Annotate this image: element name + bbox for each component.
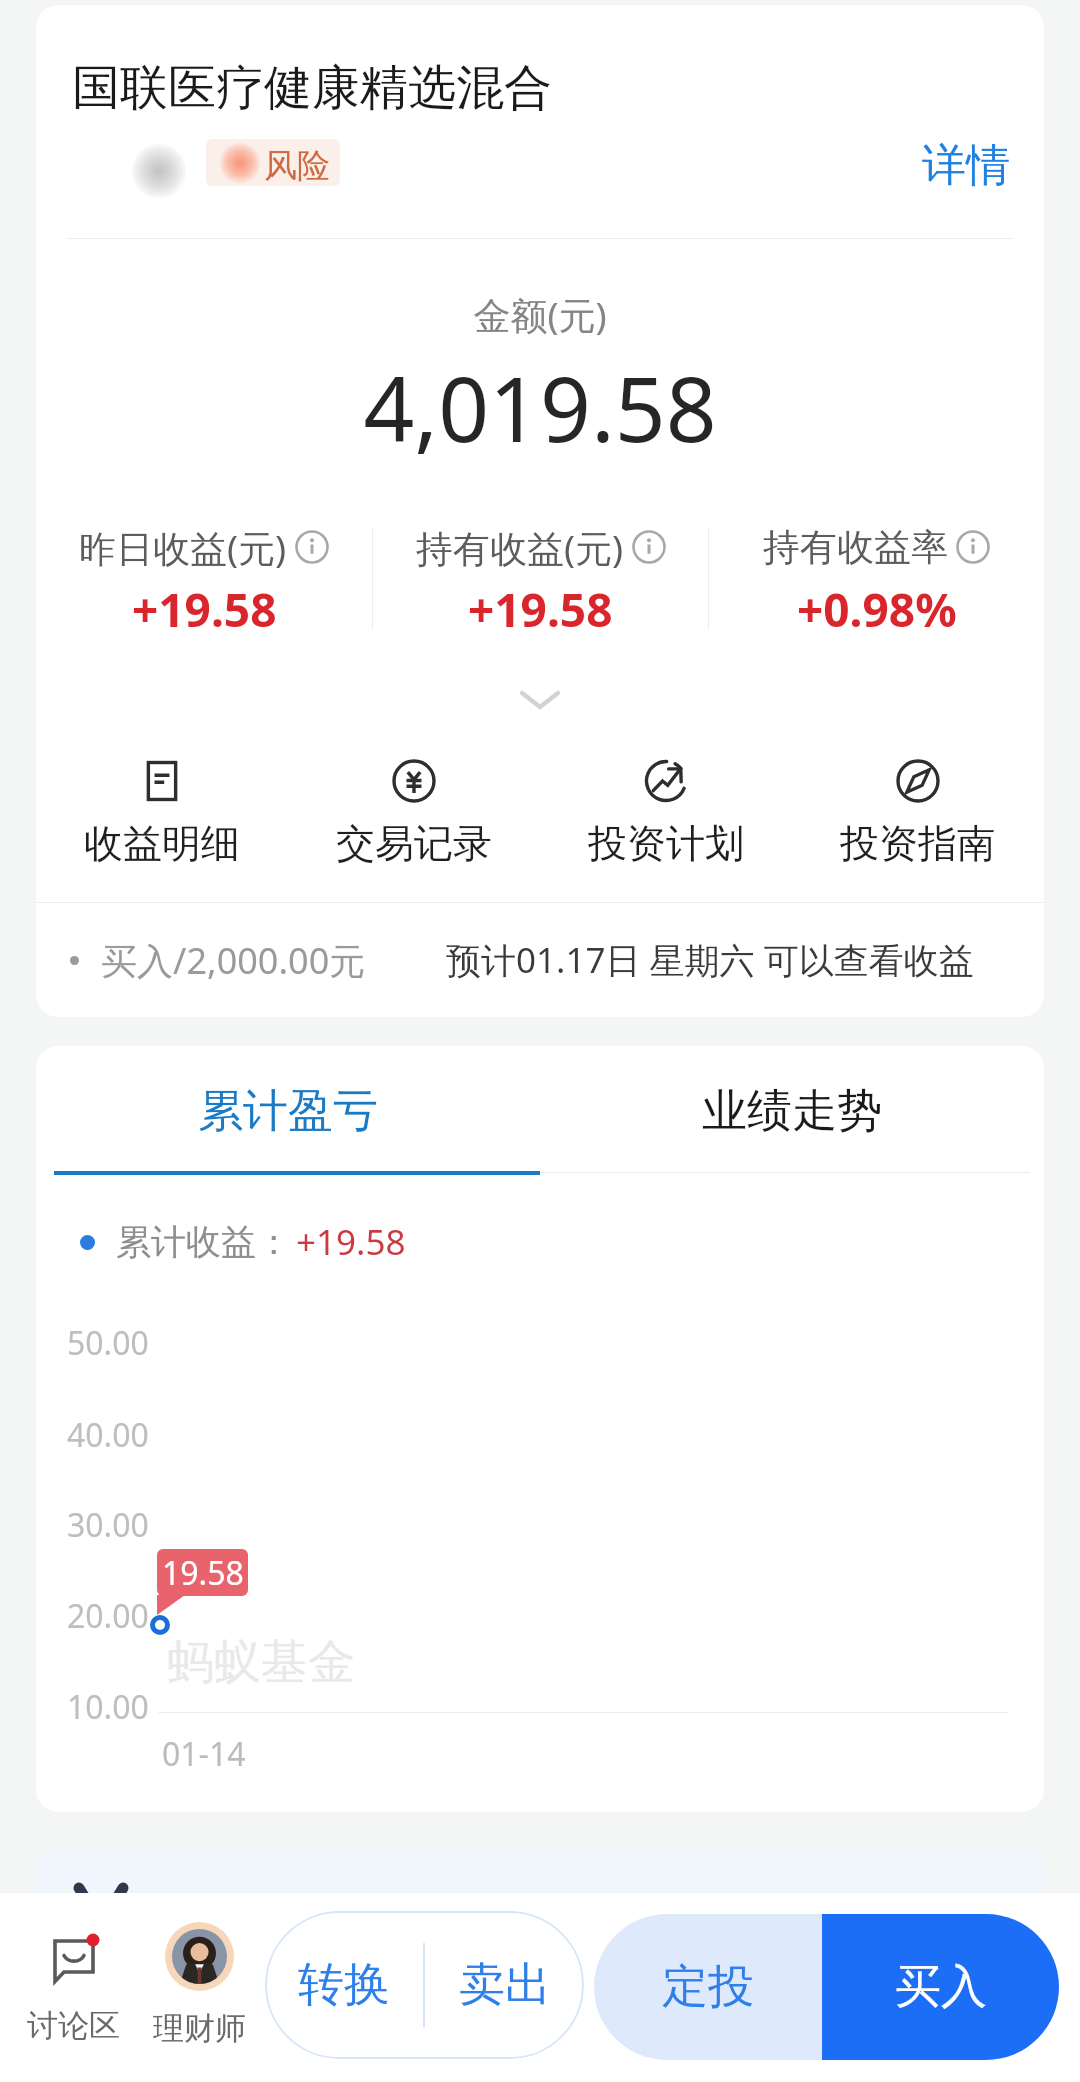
staticText: +19.58 [468,578,613,641]
staticText: 累计盈亏 [198,1083,378,1140]
button[interactable]: 理财师 [133,1922,266,2048]
button[interactable] [36,1846,1044,2006]
staticText: 蚂蚁基金 [167,1633,355,1692]
button[interactable]: 投资计划 [540,759,792,868]
staticText: 买入/2,000.00元 [101,936,366,985]
staticText: 19.58 [162,1551,244,1595]
button[interactable]: 买入 [822,1914,1059,2060]
button[interactable]: 投资指南 [792,759,1044,868]
button[interactable]: 定投 [594,1914,822,2060]
button[interactable]: 展开 [470,665,610,735]
button[interactable]: 累计盈亏 [36,1046,540,1176]
staticText: 买入 [895,1958,987,2016]
staticText: 转换 [298,1956,390,2014]
button[interactable]: 买入/2,000.00元 [36,903,1044,1017]
staticText: 预计01.17日 星期六 可以查看收益 [446,936,974,984]
staticText: 40.00 [67,1413,149,1457]
button[interactable]: 持有收益(元) [373,521,708,661]
staticText: 金额(元) [36,289,1044,340]
button[interactable]: 业绩走势 [540,1046,1044,1176]
staticText: 理财师 [153,2009,246,2048]
staticText: 投资计划 [588,819,744,868]
staticText: 持有收益率 [763,524,948,571]
staticText: 20.00 [67,1594,149,1638]
staticText: 国联医疗健康精选混合 [72,58,552,118]
button[interactable]: 昨日收益(元) [36,521,372,661]
staticText: 收益明细 [84,819,240,868]
staticText: 讨论区 [27,2006,120,2045]
staticText: +19.58 [132,578,277,641]
button[interactable]: 卖出 [425,1911,584,2059]
staticText: 风险 [264,145,330,186]
staticText: 业绩走势 [702,1083,882,1140]
button[interactable]: 转换 [265,1911,423,2059]
staticText: 持有收益(元) [416,522,624,573]
button[interactable]: 持有收益率 [709,521,1044,661]
staticText: 10.00 [67,1685,149,1729]
button[interactable]: 详情 [904,126,1028,204]
staticText: +0.98% [797,578,957,641]
staticText: 定投 [662,1958,754,2016]
staticText: 详情 [922,138,1010,193]
staticText: 昨日收益(元) [79,522,287,573]
button[interactable]: 讨论区 [6,1933,141,2045]
staticText: 30.00 [67,1503,149,1547]
staticText: +19.58 [296,1218,406,1266]
staticText: 4,019.58 [36,347,1044,468]
button[interactable]: 收益明细 [36,759,288,868]
staticText: 累计收益： [116,1220,291,1264]
staticText: 投资指南 [840,819,996,868]
button[interactable]: 交易记录 [288,759,540,868]
staticText: 01-14 [162,1732,246,1776]
staticText: 交易记录 [336,819,492,868]
staticText: 卖出 [459,1956,551,2014]
staticText: 50.00 [67,1321,149,1365]
